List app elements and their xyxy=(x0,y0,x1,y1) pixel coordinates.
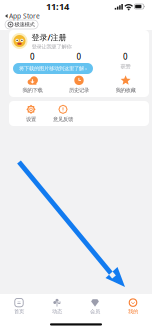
staticText: 0 xyxy=(30,51,35,62)
staticText: 设置 xyxy=(26,116,36,122)
staticText: 0 xyxy=(76,51,81,62)
staticText: 意见反馈 xyxy=(53,116,73,122)
staticText: 我的 xyxy=(128,308,138,315)
staticText: 登录让我更了解你 xyxy=(31,43,71,50)
staticText: 获赞 xyxy=(121,63,131,70)
button[interactable]: 动态 xyxy=(38,298,76,315)
button[interactable]: 历史记录 xyxy=(56,74,102,95)
button[interactable]: 会员 xyxy=(76,298,114,315)
button[interactable]: 设置 xyxy=(15,103,47,124)
button[interactable]: 0 xyxy=(102,52,149,69)
staticText: 0 xyxy=(123,51,128,62)
staticText: 会员 xyxy=(90,308,100,315)
staticText: 我的收藏 xyxy=(116,87,136,93)
button[interactable]: 0 xyxy=(56,52,102,69)
staticText: 首页 xyxy=(14,308,24,315)
staticText: App Store xyxy=(9,12,40,20)
button[interactable]: 我的下载 xyxy=(9,74,56,95)
staticText: 历史记录 xyxy=(69,87,89,93)
button[interactable]: 意见反馈 xyxy=(47,103,79,124)
staticText: 动态 xyxy=(52,308,62,315)
staticText: 将下载的图片移动到这里了解 xyxy=(19,65,84,72)
staticText: 11:14 xyxy=(46,0,69,13)
staticText: 粉丝 xyxy=(74,63,84,70)
button[interactable]: 将下载的图片移动到这里了解 xyxy=(13,63,93,74)
staticText: 极速模式 xyxy=(15,21,35,28)
button[interactable]: 0 xyxy=(9,52,56,69)
staticText: 登录/注册 xyxy=(31,32,66,43)
button[interactable]: 我的 xyxy=(114,298,152,315)
button[interactable]: 我的收藏 xyxy=(102,74,149,95)
staticText: 关注 xyxy=(27,63,37,70)
button[interactable]: 首页 xyxy=(0,298,38,315)
staticText: › xyxy=(85,65,87,72)
staticText: 我的下载 xyxy=(22,87,42,93)
button[interactable]: 登录/注册 xyxy=(6,30,151,52)
button[interactable]: 极速模式 xyxy=(5,20,38,29)
